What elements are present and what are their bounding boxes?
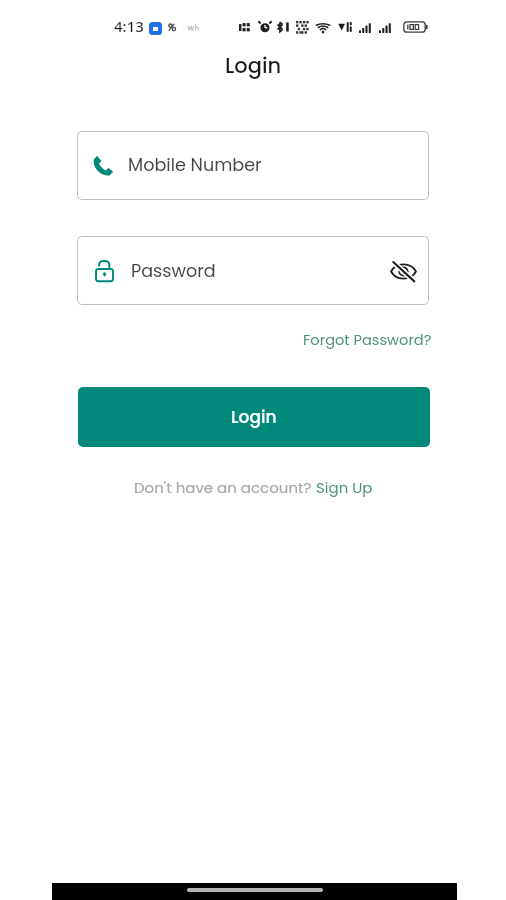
staticText: Login: [231, 405, 277, 429]
staticText: Sign Up: [316, 477, 373, 498]
button[interactable]: Mobile Number: [77, 131, 429, 200]
staticText: Mobile Number: [128, 153, 262, 178]
button[interactable]: Login: [78, 387, 430, 447]
staticText: 4:13: [114, 16, 144, 36]
staticText: Forgot Password?: [303, 330, 432, 350]
staticText: Don't have an account?: [134, 477, 316, 498]
button[interactable]: Show password: [381, 249, 425, 293]
button[interactable]: Sign Up: [316, 477, 373, 498]
staticText: Password: [131, 259, 216, 284]
button[interactable]: Password: [77, 236, 429, 305]
staticText: Login: [225, 51, 282, 80]
button[interactable]: Forgot Password?: [301, 328, 434, 352]
